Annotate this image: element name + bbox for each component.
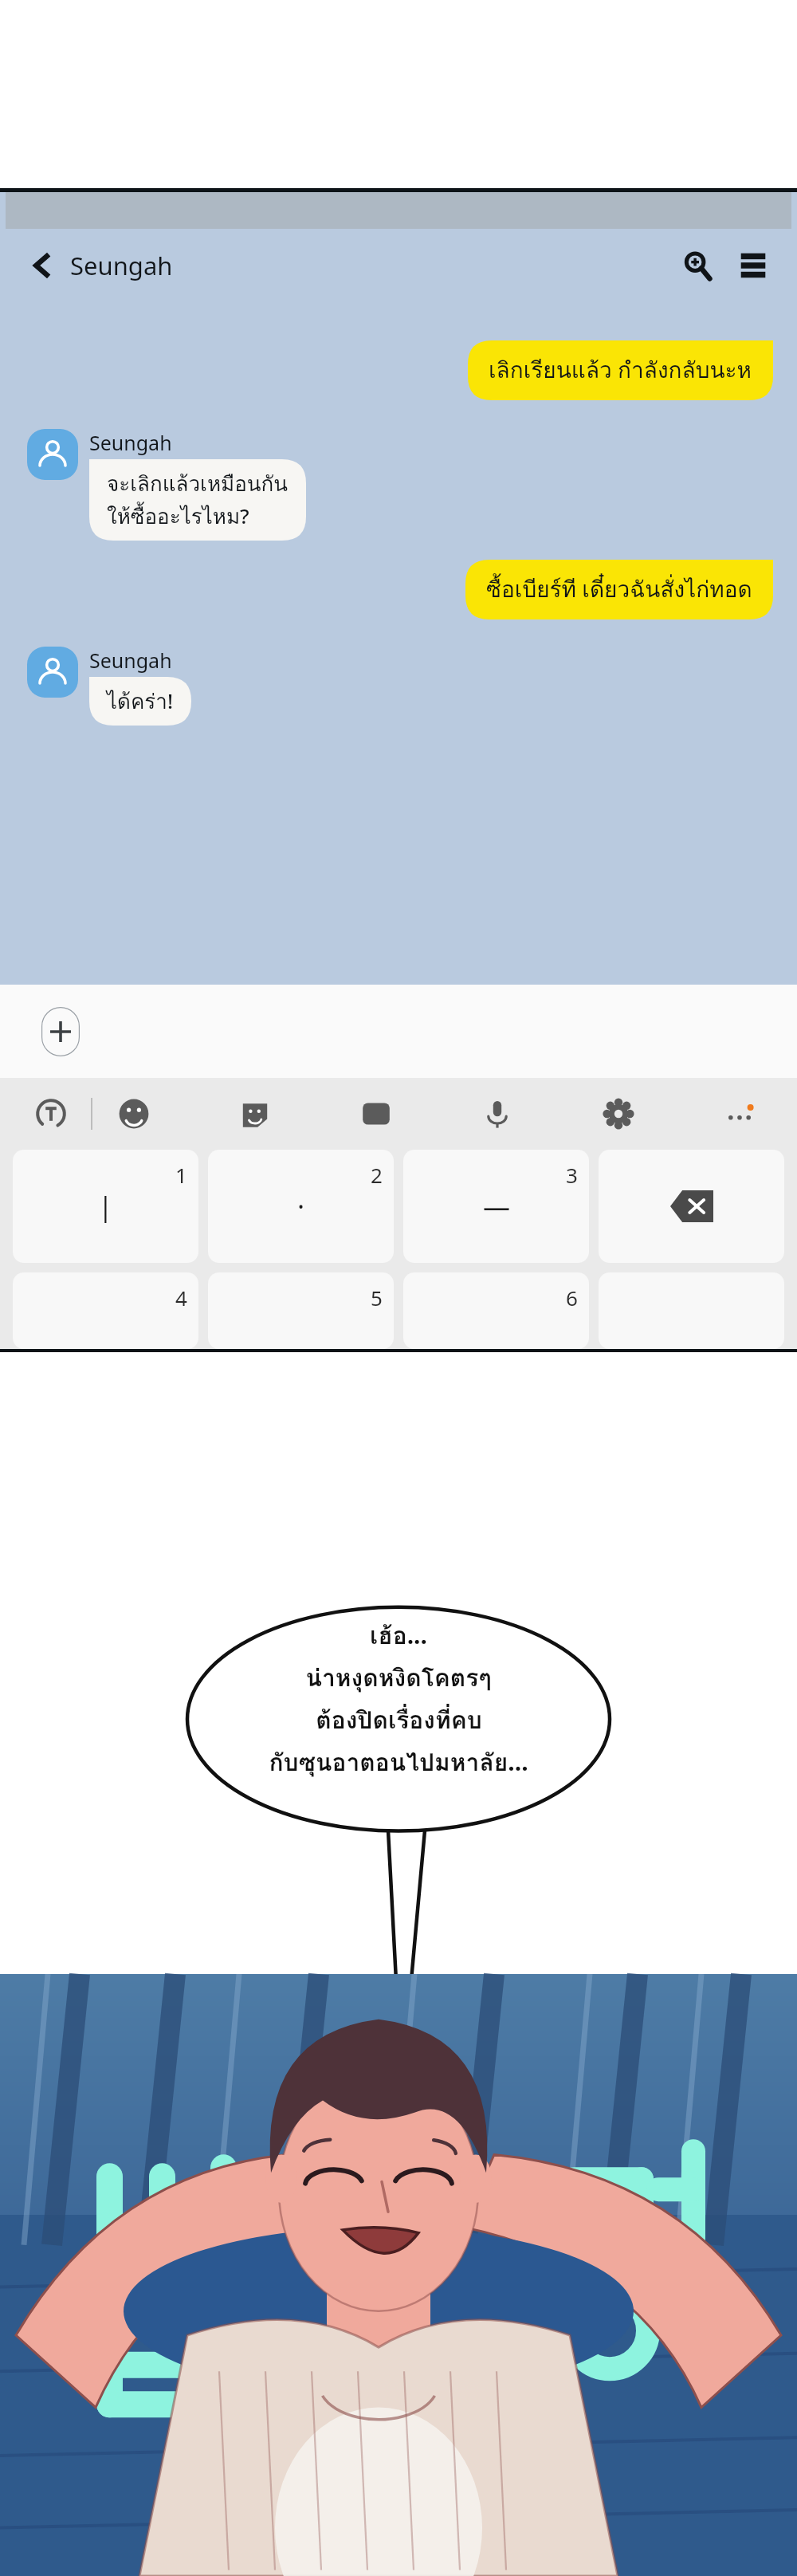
button[interactable]: 3 bbox=[403, 1150, 589, 1263]
staticText: 3 bbox=[566, 1161, 578, 1189]
staticText: Seungah bbox=[89, 429, 172, 456]
button[interactable]: Emoji bbox=[105, 1085, 163, 1142]
staticText: — bbox=[483, 1188, 510, 1225]
staticText: Seungah bbox=[89, 647, 172, 674]
staticText: 2 bbox=[371, 1161, 383, 1189]
button[interactable]: Stickers bbox=[226, 1085, 284, 1142]
staticText: 5 bbox=[371, 1284, 383, 1312]
staticText: ต้องปิดเรื่องที่คบ bbox=[316, 1701, 482, 1740]
button[interactable]: Backspace bbox=[599, 1150, 784, 1263]
staticText: น่าหงุดหงิดโคตรๆ bbox=[305, 1659, 492, 1697]
button[interactable]: ได้คร่า! bbox=[89, 677, 191, 726]
staticText: เลิกเรียนแล้ว กำลังกลับนะห bbox=[489, 352, 752, 388]
button[interactable]: 4 bbox=[13, 1272, 198, 1349]
staticText: จะเลิกแล้วเหมือนกัน bbox=[107, 467, 289, 500]
staticText: Seungah bbox=[70, 249, 173, 282]
staticText: เฮ้อ... bbox=[370, 1617, 427, 1655]
button[interactable]: จะเลิกแล้วเหมือนกัน bbox=[89, 459, 306, 541]
staticText: | bbox=[98, 1188, 113, 1225]
staticText: 4 bbox=[175, 1284, 187, 1312]
button[interactable]: 1 bbox=[13, 1150, 198, 1263]
button[interactable]: 5 bbox=[208, 1272, 394, 1349]
button[interactable]: Back bbox=[21, 245, 62, 286]
button[interactable]: GIF bbox=[347, 1085, 405, 1142]
button[interactable]: Add attachment bbox=[41, 1007, 80, 1056]
button[interactable]: Menu bbox=[730, 242, 776, 289]
staticText: 6 bbox=[566, 1284, 578, 1312]
button[interactable]: เลิกเรียนแล้ว กำลังกลับนะห bbox=[468, 340, 773, 400]
button[interactable]: Settings bbox=[590, 1085, 647, 1142]
button[interactable]: ซื้อเบียร์ที เดี๋ยวฉันสั่งไก่ทอด bbox=[465, 560, 773, 619]
button[interactable]: Voice input bbox=[469, 1085, 526, 1142]
staticText: ให้ซื้ออะไรไหม? bbox=[107, 500, 249, 533]
staticText: ได้คร่า! bbox=[107, 685, 174, 718]
staticText: · bbox=[297, 1188, 305, 1225]
button[interactable]: Translate bbox=[22, 1085, 80, 1142]
button[interactable]: 2 bbox=[208, 1150, 394, 1263]
button[interactable]: 6 bbox=[403, 1272, 589, 1349]
staticText: ซื้อเบียร์ที เดี๋ยวฉันสั่งไก่ทอด bbox=[486, 572, 752, 608]
staticText: กับซุนอาตอนไปมหาลัย... bbox=[269, 1744, 528, 1782]
staticText: 1 bbox=[175, 1161, 187, 1189]
button[interactable]: Search bbox=[674, 242, 720, 289]
button[interactable]: More options bbox=[711, 1085, 768, 1142]
